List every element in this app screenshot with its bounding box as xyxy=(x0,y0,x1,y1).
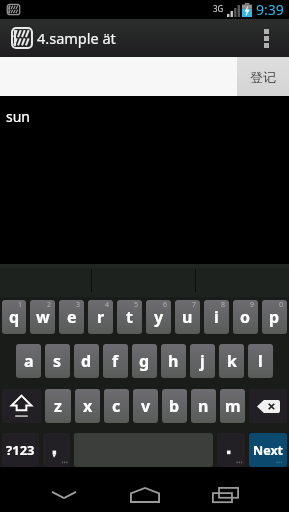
staticText: z xyxy=(54,395,62,417)
button[interactable]: c xyxy=(104,389,129,423)
staticText: c xyxy=(112,395,121,417)
staticText: e xyxy=(67,306,77,328)
button[interactable]: Symbols xyxy=(2,433,39,467)
button[interactable]: l xyxy=(248,344,273,378)
staticText: 1 xyxy=(18,300,23,310)
staticText: y xyxy=(154,306,164,328)
button[interactable]: Home xyxy=(104,478,185,512)
staticText: 0 xyxy=(279,300,284,310)
button[interactable]: d xyxy=(74,344,99,378)
button[interactable]: r xyxy=(88,300,113,334)
button[interactable]: Recent apps xyxy=(185,478,266,512)
staticText: p xyxy=(269,306,280,328)
button[interactable]: 登记 xyxy=(237,57,289,96)
staticText: g xyxy=(139,350,150,372)
button[interactable]: w xyxy=(30,300,55,334)
staticText: t xyxy=(126,306,133,328)
staticText: 4.sample ät xyxy=(37,28,116,48)
staticText: b xyxy=(169,395,180,417)
staticText: k xyxy=(227,350,237,372)
staticText: 2 xyxy=(47,300,52,310)
staticText: sun xyxy=(6,107,31,126)
button[interactable]: Backspace xyxy=(249,389,287,423)
staticText: l xyxy=(258,350,263,372)
button[interactable]: i xyxy=(204,300,229,334)
staticText: 3 xyxy=(76,300,81,310)
staticText: u xyxy=(182,306,193,328)
staticText: 9:39 xyxy=(256,0,284,19)
button[interactable]: Back xyxy=(23,478,104,512)
button[interactable]: Comma xyxy=(43,433,70,467)
button[interactable]: Next xyxy=(249,433,287,467)
button[interactable]: x xyxy=(75,389,100,423)
staticText: q xyxy=(9,306,20,328)
button[interactable]: k xyxy=(219,344,244,378)
button[interactable]: More options xyxy=(243,19,289,57)
button[interactable]: h xyxy=(161,344,186,378)
button[interactable]: u xyxy=(175,300,200,334)
button[interactable]: y xyxy=(146,300,171,334)
staticText: 3G xyxy=(213,3,224,14)
staticText: Next xyxy=(253,442,284,459)
button[interactable]: p xyxy=(262,300,287,334)
button[interactable]: g xyxy=(132,344,157,378)
button[interactable]: f xyxy=(103,344,128,378)
staticText: r xyxy=(97,306,105,328)
button[interactable]: b xyxy=(162,389,187,423)
button[interactable]: m xyxy=(220,389,245,423)
staticText: a xyxy=(24,350,34,372)
staticText: ?123 xyxy=(6,441,35,459)
button[interactable]: Period xyxy=(217,433,245,467)
staticText: o xyxy=(240,306,251,328)
button[interactable]: j xyxy=(190,344,215,378)
button[interactable]: a xyxy=(16,344,41,378)
staticText: n xyxy=(198,395,209,417)
staticText: 9 xyxy=(250,300,255,310)
staticText: i xyxy=(214,306,219,328)
button[interactable]: o xyxy=(233,300,258,334)
button[interactable]: q xyxy=(2,300,26,334)
staticText: 4 xyxy=(105,300,110,310)
button[interactable]: v xyxy=(133,389,158,423)
staticText: 7 xyxy=(192,300,197,310)
staticText: s xyxy=(53,350,62,372)
staticText: f xyxy=(112,350,119,372)
staticText: m xyxy=(225,395,241,417)
button[interactable]: t xyxy=(117,300,142,334)
staticText: 6 xyxy=(163,300,168,310)
button[interactable]: s xyxy=(45,344,70,378)
staticText: j xyxy=(200,350,205,372)
button[interactable]: n xyxy=(191,389,216,423)
staticText: h xyxy=(168,350,179,372)
button[interactable]: z xyxy=(45,389,71,423)
staticText: d xyxy=(81,350,92,372)
staticText: 登记 xyxy=(250,69,276,85)
staticText: v xyxy=(141,395,151,417)
staticText: x xyxy=(83,395,93,417)
staticText: w xyxy=(36,306,50,328)
button[interactable]: e xyxy=(59,300,84,334)
staticText: 8 xyxy=(221,300,226,310)
staticText: 5 xyxy=(134,300,139,310)
button[interactable]: Shift xyxy=(2,389,41,423)
